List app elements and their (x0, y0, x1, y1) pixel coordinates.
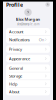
staticText: General (9, 65, 23, 71)
button[interactable]: Account (6, 28, 50, 35)
staticText: On (39, 37, 44, 42)
staticText: Privacy (9, 46, 22, 52)
staticText: alex@example.com (17, 22, 39, 26)
button[interactable]: Help (6, 80, 50, 88)
button[interactable]: Storage (6, 72, 50, 80)
staticText: Help (9, 81, 17, 86)
staticText: Account (9, 29, 23, 34)
staticText: Storage (9, 73, 22, 79)
staticText: Alex Morgan (15, 17, 40, 22)
button[interactable]: General (6, 64, 50, 72)
button[interactable]: Notifications (6, 36, 50, 43)
button[interactable]: Appearance (6, 55, 50, 62)
button[interactable]: Privacy (6, 45, 50, 53)
button[interactable]: Account (45, 2, 50, 7)
staticText: Appearance (9, 56, 30, 61)
staticText: About (9, 89, 19, 94)
staticText: Profile (6, 1, 23, 8)
staticText: Notifications (9, 37, 30, 42)
button[interactable]: About (6, 88, 50, 95)
